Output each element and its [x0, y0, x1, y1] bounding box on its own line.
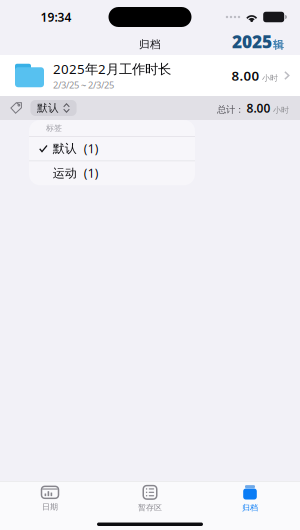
staticText: (1)	[84, 141, 99, 156]
staticText: 8.00	[246, 100, 270, 116]
staticText: 归档	[139, 38, 161, 51]
staticText: 辑	[273, 38, 284, 51]
staticText: (1)	[84, 165, 99, 181]
staticText: 归档	[242, 503, 258, 513]
staticText: 暂存区	[138, 503, 162, 512]
staticText: 小时	[273, 105, 289, 115]
staticText: 标签	[46, 123, 62, 133]
staticText: 2025	[232, 30, 272, 53]
staticText: 2025年2月工作时长	[53, 60, 171, 78]
staticText: 总计：	[217, 104, 244, 115]
button[interactable]: 默认	[29, 137, 195, 161]
button[interactable]: 归档	[200, 488, 300, 510]
button[interactable]: 运动	[29, 161, 195, 185]
button[interactable]: 默认	[30, 100, 77, 116]
button[interactable]: 暂存区	[100, 488, 200, 510]
staticText: 19:34	[40, 9, 71, 25]
button[interactable]: 2025年2月工作时长	[0, 55, 300, 96]
staticText: 运动	[53, 166, 77, 180]
staticText: 小时	[262, 73, 278, 83]
staticText: 日期	[42, 502, 58, 512]
staticText: 默认	[53, 141, 77, 156]
staticText: 8.00	[231, 67, 259, 84]
staticText: 默认	[37, 101, 59, 114]
button[interactable]: 日期	[0, 488, 100, 510]
staticText: 2/3/25 ~ 2/3/25	[53, 79, 114, 91]
